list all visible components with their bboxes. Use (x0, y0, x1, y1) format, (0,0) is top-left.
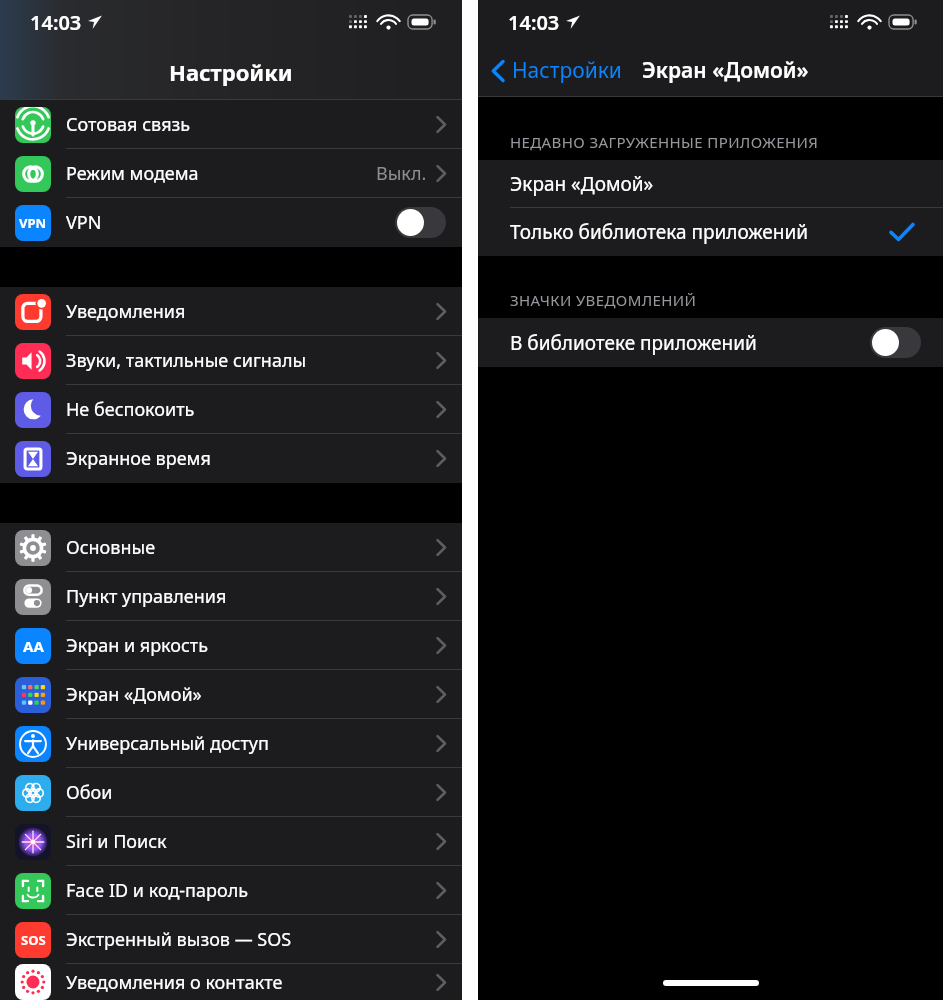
staticText: 14:03 (508, 9, 560, 36)
staticText: Экран «Домой» (66, 682, 202, 707)
staticText: Универсальный доступ (66, 731, 269, 756)
button[interactable]: Siri и Поиск (0, 817, 462, 866)
staticText: Siri и Поиск (66, 829, 167, 854)
staticText: Face ID и код-пароль (66, 878, 249, 903)
staticText: Режим модема (66, 161, 199, 186)
staticText: 14:03 (30, 9, 82, 36)
button[interactable]: Уведомления (0, 287, 462, 336)
staticText: Настройки (512, 56, 622, 85)
staticText: Обои (66, 780, 113, 805)
button[interactable]: Обои (0, 768, 462, 817)
staticText: Не беспокоить (66, 397, 195, 422)
button[interactable]: Экран «Домой» (478, 160, 943, 208)
button[interactable]: Экранное время (0, 434, 462, 483)
staticText: VPN (19, 214, 47, 232)
button[interactable]: Настройки (492, 56, 622, 85)
button[interactable]: В библиотеке приложений (478, 318, 943, 367)
button[interactable]: SOS (0, 915, 462, 964)
staticText: Звуки, тактильные сигналы (66, 348, 307, 373)
button[interactable]: Сотовая связь (0, 100, 462, 149)
button[interactable]: В библиотеке приложений (870, 327, 921, 358)
button[interactable]: AA (0, 621, 462, 670)
button[interactable]: Только библиотека приложений (478, 208, 943, 256)
staticText: Экран «Домой» (510, 171, 654, 197)
button[interactable]: Экран «Домой» (0, 670, 462, 719)
button[interactable]: VPN (395, 207, 446, 238)
button[interactable]: Звуки, тактильные сигналы (0, 336, 462, 385)
staticText: Основные (66, 535, 156, 560)
button[interactable]: Пункт управления (0, 572, 462, 621)
staticText: Экран и яркость (66, 633, 209, 658)
button[interactable]: Не беспокоить (0, 385, 462, 434)
staticText: Экран «Домой» (642, 56, 809, 85)
button[interactable]: Уведомления о контакте (0, 964, 462, 1000)
staticText: Экранное время (66, 446, 211, 471)
button[interactable]: Универсальный доступ (0, 719, 462, 768)
staticText: ЗНАЧКИ УВЕДОМЛЕНИЙ (510, 290, 697, 310)
button[interactable]: Режим модема (0, 149, 462, 198)
staticText: Только библиотека приложений (510, 219, 809, 245)
staticText: Уведомления (66, 299, 186, 324)
staticText: В библиотеке приложений (510, 330, 757, 356)
staticText: VPN (66, 210, 102, 235)
staticText: НЕДАВНО ЗАГРУЖЕННЫЕ ПРИЛОЖЕНИЯ (510, 132, 819, 152)
staticText: Пункт управления (66, 584, 227, 609)
staticText: Уведомления о контакте (66, 970, 283, 995)
staticText: Экстренный вызов — SOS (66, 927, 292, 952)
staticText: Настройки (169, 57, 293, 87)
staticText: AA (23, 636, 44, 656)
button[interactable]: VPN (0, 198, 462, 247)
staticText: Выкл. (376, 161, 427, 186)
staticText: SOS (21, 931, 46, 949)
staticText: Сотовая связь (66, 112, 191, 137)
button[interactable]: Face ID и код-пароль (0, 866, 462, 915)
button[interactable]: Основные (0, 523, 462, 572)
